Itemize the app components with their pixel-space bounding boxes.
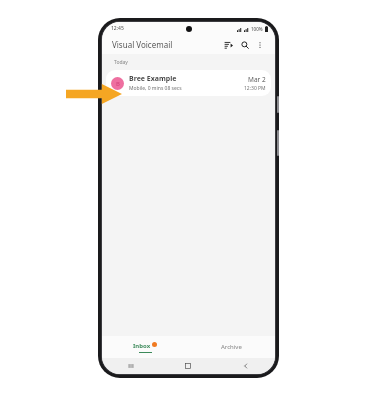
button[interactable]: Inbox: [102, 336, 188, 358]
button[interactable]: Recents: [102, 358, 159, 374]
staticText: Bree Example: [129, 74, 177, 84]
button[interactable]: Home: [159, 358, 217, 374]
staticText: Archive: [221, 343, 242, 351]
staticText: 12:45: [111, 25, 124, 32]
staticText: Inbox: [133, 342, 151, 350]
button[interactable]: Archive: [188, 336, 275, 358]
button[interactable]: Filter: [222, 38, 236, 52]
staticText: Mobile, 0 mins 08 secs: [129, 85, 182, 92]
staticText: Today: [114, 59, 128, 66]
staticText: B: [116, 80, 120, 88]
staticText: Visual Voicemail: [112, 39, 222, 50]
staticText: 100%: [251, 26, 263, 32]
button[interactable]: Search: [238, 38, 252, 52]
staticText: 12:30 PM: [244, 85, 266, 92]
staticText: Mar 2: [248, 75, 266, 84]
button[interactable]: B: [106, 70, 271, 96]
button[interactable]: More options: [253, 38, 267, 52]
button[interactable]: Back: [217, 358, 275, 374]
